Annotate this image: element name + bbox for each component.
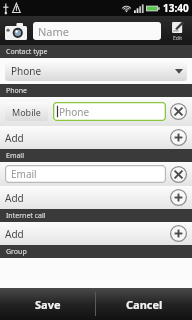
staticText: Phone [59,105,90,119]
staticText: Name [38,24,70,39]
staticText: Edit [173,35,182,42]
button[interactable]: Add [0,222,192,245]
staticText: Group [6,247,27,257]
staticText: Add [5,191,170,205]
staticText: 13:40 [163,1,189,15]
button[interactable]: Add photo [3,19,29,43]
button[interactable]: Add [170,189,187,206]
button[interactable]: Add [170,225,187,242]
button[interactable]: Name [33,22,161,40]
button[interactable]: Cancel [96,288,192,320]
button[interactable]: Phone [5,61,187,81]
staticText: Internet call [6,211,46,221]
button[interactable]: Add [0,186,192,209]
staticText: Email [11,167,37,181]
staticText: Cancel [126,297,163,312]
button[interactable]: Mobile [5,102,48,121]
button[interactable]: Add [0,126,192,149]
button[interactable]: Phone [53,102,166,121]
staticText: Mobile [12,106,41,118]
staticText: Save [35,297,61,312]
staticText: Phone [11,64,175,78]
button[interactable]: Email [5,165,166,183]
staticText: Contact type [6,47,48,57]
button[interactable]: Add [170,129,187,146]
button[interactable]: Remove [170,103,187,120]
staticText: Phone [6,86,28,96]
staticText: Add [5,227,170,241]
staticText: Add [5,131,170,145]
staticText: Email [6,151,24,161]
button[interactable]: Remove [170,166,187,183]
button[interactable]: Edit [165,18,189,44]
button[interactable]: Save [0,288,95,320]
